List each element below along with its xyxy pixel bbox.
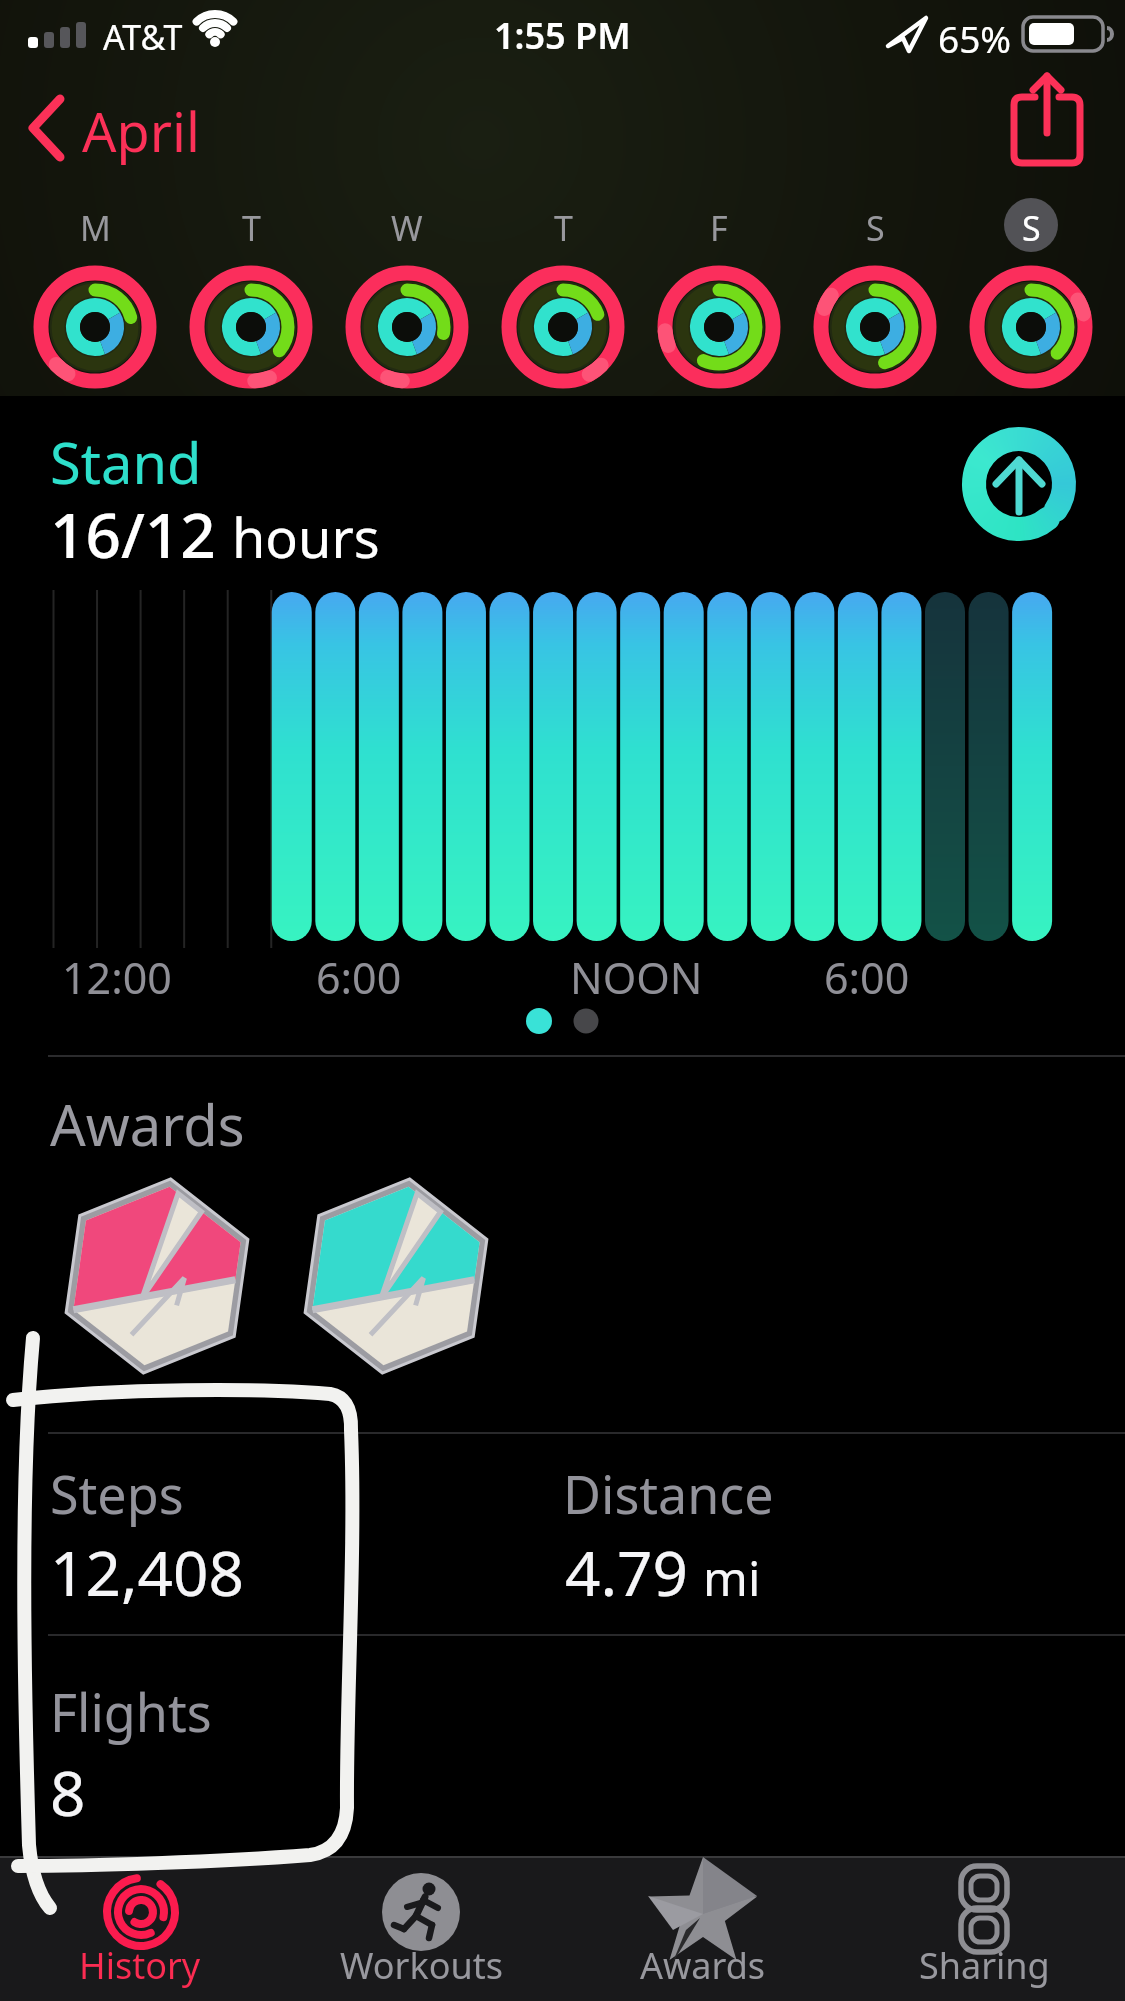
button[interactable]: [996, 76, 1096, 172]
staticText: Awards: [50, 1086, 245, 1162]
staticText: 8: [50, 1750, 86, 1834]
staticText: F: [710, 205, 728, 251]
staticText: hours: [232, 500, 380, 574]
button[interactable]: Awards: [613, 1858, 793, 1998]
staticText: Flights: [50, 1676, 212, 1747]
staticText: History: [79, 1941, 201, 1990]
staticText: 65%: [938, 13, 1012, 63]
staticText: Distance: [563, 1458, 774, 1529]
staticText: S: [866, 205, 885, 251]
button[interactable]: Workouts: [331, 1858, 511, 1998]
staticText: Stand: [50, 424, 202, 500]
staticText: W: [391, 205, 423, 251]
staticText: M: [80, 205, 111, 251]
staticText: T: [242, 205, 261, 251]
staticText: 1:55 PM: [494, 11, 631, 60]
staticText: S: [1022, 205, 1041, 251]
staticText: Awards: [640, 1941, 766, 1990]
staticText: 4.79: [565, 1530, 689, 1614]
staticText: 6:00: [316, 948, 402, 1007]
staticText: mi: [703, 1545, 761, 1610]
staticText: NOON: [570, 948, 703, 1007]
staticText: Sharing: [919, 1941, 1050, 1990]
button[interactable]: April: [20, 88, 200, 168]
staticText: 12:00: [62, 948, 172, 1007]
staticText: 6:00: [824, 948, 910, 1007]
staticText: Steps: [50, 1458, 184, 1529]
button[interactable]: Sharing: [894, 1858, 1074, 1998]
button[interactable]: History: [50, 1858, 230, 1998]
button[interactable]: [962, 427, 1076, 541]
staticText: Workouts: [340, 1941, 503, 1990]
staticText: T: [554, 205, 573, 251]
staticText: 12,408: [50, 1530, 244, 1614]
staticText: April: [82, 94, 200, 168]
staticText: AT&T: [103, 14, 183, 60]
staticText: 16/12: [50, 492, 216, 576]
